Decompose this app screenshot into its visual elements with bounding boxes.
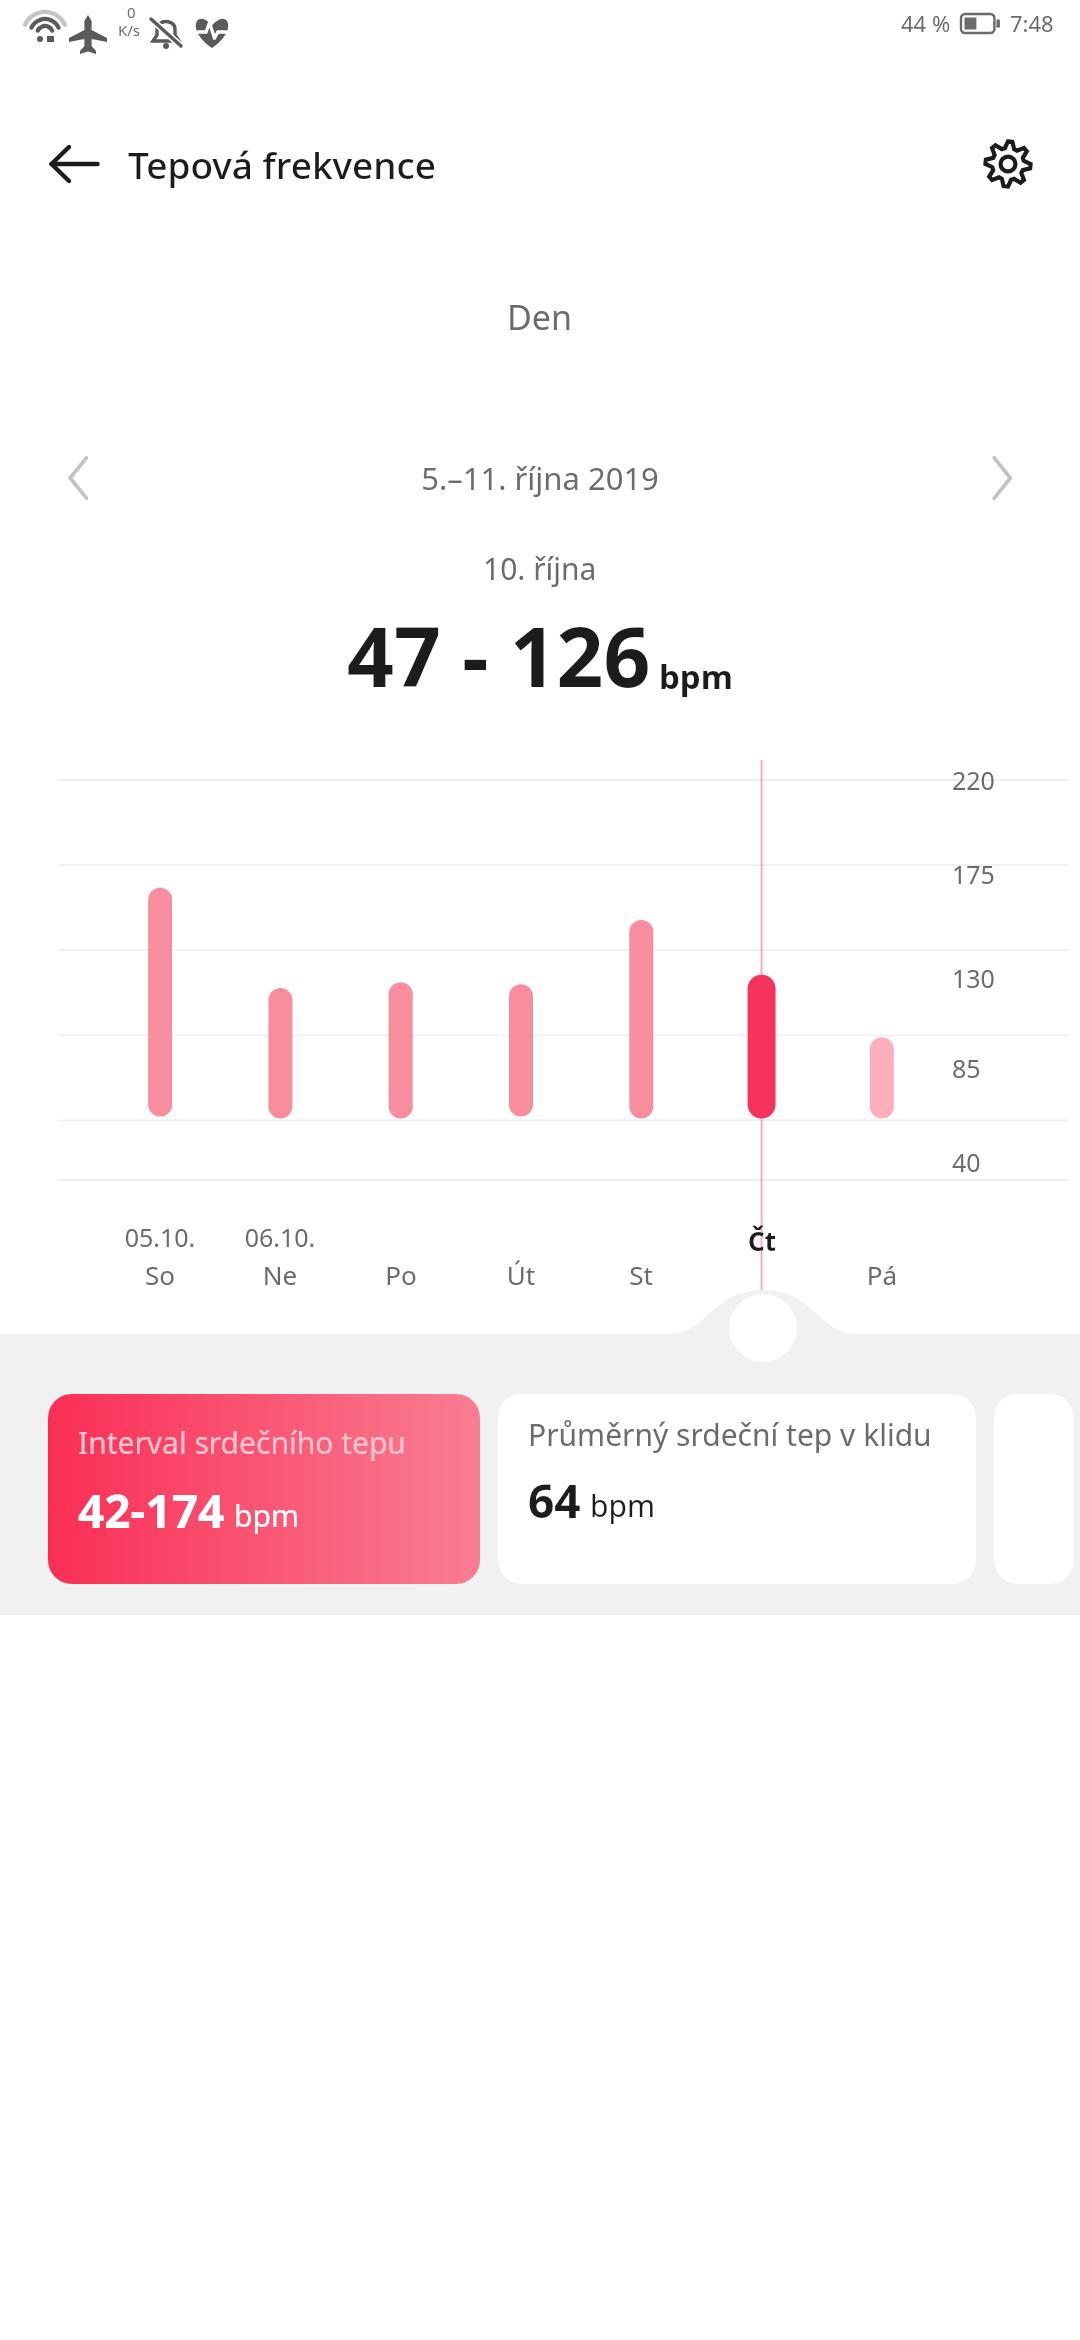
staticText: 5.–11. října 2019 [116, 457, 964, 499]
staticText: 42-174 [78, 1479, 225, 1542]
staticText: 0 [127, 2, 136, 22]
staticText: 10. října [483, 548, 597, 589]
staticText: Ne [230, 1257, 330, 1292]
staticText: 175 [952, 857, 995, 891]
staticText: 64 [528, 1469, 581, 1532]
staticText: So [110, 1257, 210, 1292]
staticText: 130 [952, 961, 995, 995]
staticText: Den [507, 294, 573, 340]
staticText: 220 [952, 763, 995, 797]
staticText: bpm [659, 654, 733, 699]
staticText: Průměrný srdeční tep v klidu [528, 1414, 932, 1455]
staticText: bpm [234, 1495, 299, 1536]
staticText: Tepová frekvence [128, 139, 436, 189]
staticText: 44 % [901, 8, 951, 38]
button[interactable]: Průměrný srdeční tep v klidu [498, 1394, 976, 1584]
staticText: 85 [952, 1051, 981, 1085]
staticText: Čt [712, 1223, 812, 1258]
button[interactable]: Back [36, 126, 112, 202]
button[interactable]: Settings [968, 124, 1048, 204]
staticText: K/s [118, 20, 141, 40]
staticText: Interval srdečního tepu [78, 1422, 406, 1463]
button[interactable]: Previous week [40, 440, 116, 516]
staticText: 40 [952, 1145, 981, 1179]
staticText: 05.10. [110, 1220, 210, 1254]
staticText: 06.10. [230, 1220, 330, 1254]
staticText: 7:48 [1010, 8, 1054, 38]
button[interactable]: Interval srdečního tepu [48, 1394, 480, 1584]
button[interactable]: Next week [964, 440, 1040, 516]
staticText: Pá [832, 1257, 932, 1292]
staticText: St [591, 1257, 691, 1292]
staticText: bpm [590, 1485, 655, 1526]
button[interactable]: Den [0, 288, 1080, 363]
staticText: Út [471, 1257, 571, 1292]
staticText: Po [351, 1257, 451, 1292]
staticText: 47 - 126 [347, 599, 651, 711]
